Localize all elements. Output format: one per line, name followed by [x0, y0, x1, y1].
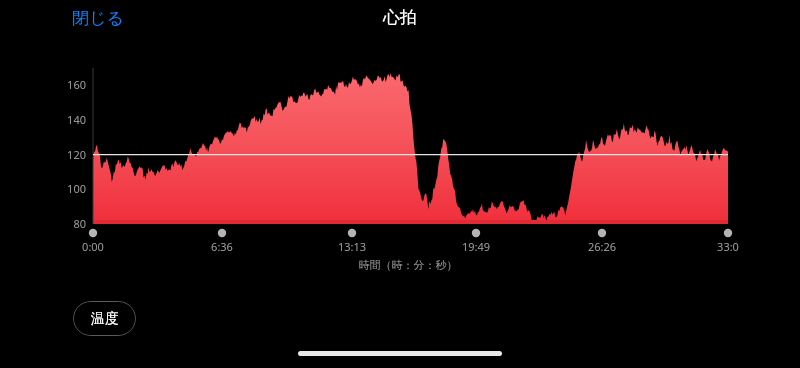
staticText: 閉じる [72, 8, 124, 29]
staticText: 26:26 [572, 239, 632, 255]
staticText: 160 [54, 77, 86, 93]
staticText: 19:49 [446, 239, 506, 255]
staticText: 80 [54, 216, 86, 232]
staticText: 6:36 [192, 239, 252, 255]
staticText: 時間（時：分：秒） [308, 258, 508, 276]
staticText: 心拍 [0, 7, 800, 368]
staticText: 100 [54, 181, 86, 197]
staticText: 13:13 [322, 239, 382, 255]
button[interactable]: 閉じる [70, 6, 126, 31]
staticText: 33:0 [698, 239, 758, 255]
button[interactable]: 温度 [73, 301, 136, 336]
staticText: 0:00 [63, 239, 123, 255]
staticText: 140 [54, 112, 86, 128]
staticText: 温度 [91, 310, 119, 328]
staticText: 120 [54, 147, 86, 163]
other: Home indicator [298, 351, 502, 356]
